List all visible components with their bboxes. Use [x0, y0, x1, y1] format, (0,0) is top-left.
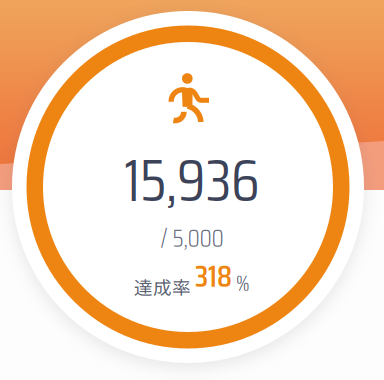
staticText: 達成率: [134, 273, 195, 300]
staticText: %: [232, 267, 250, 300]
staticText: 318: [195, 252, 232, 300]
staticText: 15,936: [124, 133, 260, 227]
staticText: / 5,000: [160, 218, 223, 258]
